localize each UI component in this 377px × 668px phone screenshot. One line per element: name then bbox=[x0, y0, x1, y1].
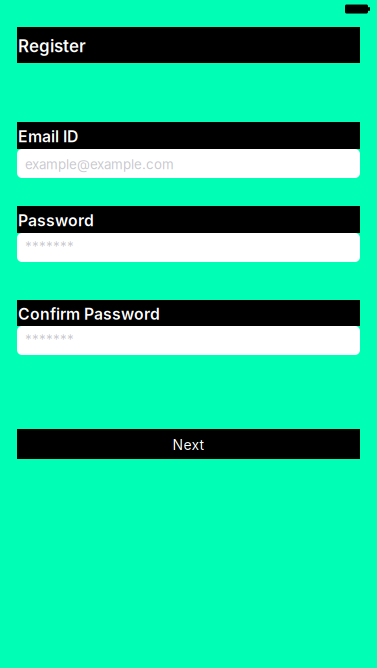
staticText: ******* bbox=[25, 238, 74, 254]
staticText: Register bbox=[18, 36, 86, 56]
staticText: Confirm Password bbox=[18, 304, 160, 323]
staticText: example@example.com bbox=[25, 156, 174, 172]
staticText: Email ID bbox=[18, 127, 78, 146]
staticText: ******* bbox=[25, 331, 74, 347]
staticText: Next bbox=[172, 436, 204, 453]
staticText: Password bbox=[18, 211, 94, 230]
button[interactable]: Next bbox=[17, 429, 360, 459]
